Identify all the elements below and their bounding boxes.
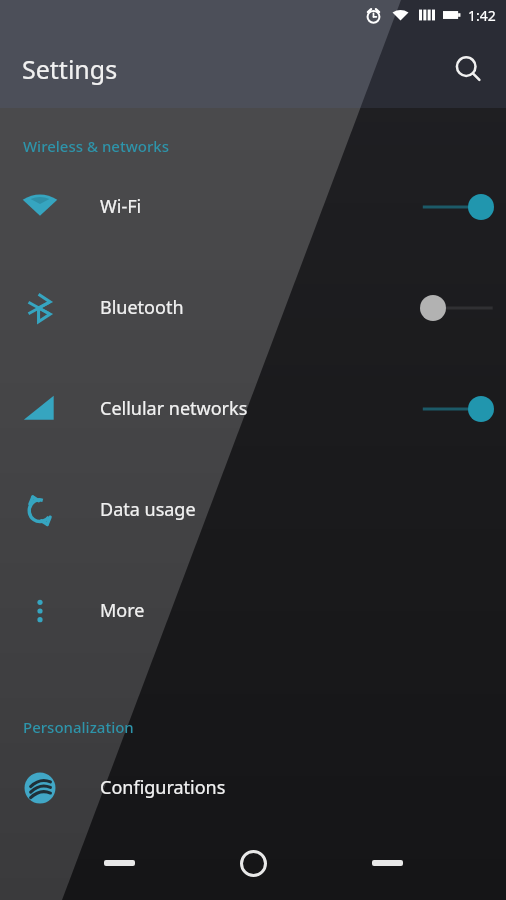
staticText: Data usage [100,497,196,522]
button[interactable]: Wi-Fi toggle [419,183,495,231]
button[interactable]: Bluetooth toggle [419,284,495,332]
button[interactable]: Data usage [0,459,506,560]
button[interactable]: Bluetooth [0,257,506,358]
staticText: Wireless & networks [23,136,169,156]
button[interactable]: Search [442,43,494,95]
staticText: Bluetooth [100,295,184,320]
staticText: Wi-Fi [100,194,142,219]
staticText: Configurations [100,775,226,800]
button[interactable]: Cellular networks [0,358,506,459]
staticText: Cellular networks [100,396,248,421]
staticText: 1:42 [468,6,496,25]
staticText: Personalization [23,717,134,737]
button[interactable]: Cellular networks toggle [419,385,495,433]
staticText: Settings [22,52,118,86]
button[interactable]: Recents [356,832,418,894]
button[interactable]: More [0,560,506,661]
button[interactable]: Back [88,832,150,894]
staticText: More [100,598,145,623]
button[interactable]: Wi-Fi [0,156,506,257]
button[interactable]: Home [222,832,284,894]
button[interactable]: Configurations [0,737,506,838]
